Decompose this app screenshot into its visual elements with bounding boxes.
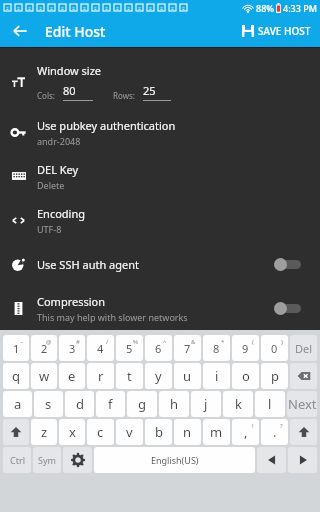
staticText: 1 — [13, 341, 20, 356]
button[interactable]: i — [203, 363, 230, 389]
staticText: andr-2048 — [37, 135, 81, 147]
staticText: % — [133, 338, 138, 346]
button[interactable]: 1 — [3, 335, 29, 361]
button[interactable]: d — [65, 391, 94, 417]
staticText: Use pubkey authentication — [37, 118, 176, 133]
button[interactable]: s — [34, 391, 63, 417]
button[interactable]: right — [288, 447, 317, 473]
button[interactable]: Use pubkey authentication — [0, 110, 320, 154]
staticText: r — [98, 367, 104, 385]
button[interactable]: DEL Key — [0, 154, 320, 198]
button[interactable]: b — [145, 419, 172, 445]
button[interactable]: c — [87, 419, 114, 445]
button[interactable]: Next — [287, 391, 317, 417]
button[interactable]: m — [203, 419, 230, 445]
staticText: 9 — [242, 341, 249, 356]
staticText: 2 — [41, 341, 48, 356]
staticText: l — [268, 395, 272, 413]
staticText: Edit Host — [45, 22, 106, 41]
button[interactable]: Back — [6, 17, 34, 45]
staticText: k — [235, 395, 242, 413]
staticText: ^ — [163, 338, 167, 346]
staticText: ! — [252, 422, 254, 430]
staticText: s — [45, 395, 52, 413]
staticText: f — [108, 395, 113, 413]
button[interactable]: up — [290, 419, 317, 445]
staticText: j — [204, 395, 208, 413]
button[interactable]: n — [174, 419, 201, 445]
button[interactable]: q — [3, 363, 29, 389]
button[interactable]: . — [261, 419, 288, 445]
button[interactable]: 9 — [232, 335, 259, 361]
button[interactable]: 3 — [59, 335, 85, 361]
staticText: 6 — [155, 341, 162, 356]
button[interactable]: x — [59, 419, 85, 445]
staticText: Sym — [38, 454, 56, 466]
button[interactable]: o — [232, 363, 259, 389]
staticText: z — [41, 423, 48, 441]
button[interactable]: SAVE HOST — [240, 20, 313, 42]
button[interactable]: Ctrl — [3, 447, 31, 473]
staticText: SAVE HOST — [258, 24, 311, 38]
staticText: h — [170, 395, 179, 413]
button[interactable]: l — [255, 391, 285, 417]
button[interactable]: h — [159, 391, 189, 417]
staticText: 0 — [271, 341, 278, 356]
staticText: p — [271, 367, 279, 385]
button[interactable]: w — [31, 363, 57, 389]
staticText: . — [273, 423, 277, 441]
button[interactable]: t — [116, 363, 143, 389]
button[interactable]: gear — [63, 447, 92, 473]
staticText: 8 — [213, 341, 220, 356]
button[interactable]: e — [59, 363, 85, 389]
staticText: g — [138, 395, 146, 413]
button[interactable]: Del — [290, 335, 317, 361]
staticText: Use SSH auth agent — [37, 257, 139, 272]
other: Compression toggle — [274, 299, 304, 317]
button[interactable]: Sym — [33, 447, 61, 473]
button[interactable]: g — [127, 391, 157, 417]
button[interactable]: a — [3, 391, 32, 417]
staticText: 4 — [97, 341, 104, 356]
staticText: DEL Key — [37, 162, 79, 177]
staticText: d — [76, 395, 84, 413]
button[interactable]: shift — [3, 419, 29, 445]
staticText: # — [76, 338, 80, 346]
button[interactable]: v — [116, 419, 143, 445]
button[interactable]: English(US) — [94, 447, 255, 473]
button[interactable]: r — [87, 363, 114, 389]
button[interactable]: Window size — [0, 55, 320, 110]
button[interactable]: y — [145, 363, 172, 389]
staticText: , — [244, 423, 248, 441]
staticText: q — [12, 367, 20, 385]
button[interactable]: Encoding — [0, 198, 320, 242]
button[interactable]: 5 — [116, 335, 143, 361]
button[interactable]: 0 — [261, 335, 288, 361]
button[interactable]: 2 — [31, 335, 57, 361]
button[interactable]: 8 — [203, 335, 230, 361]
staticText: & — [191, 338, 196, 346]
button[interactable]: bsp — [290, 363, 317, 389]
staticText: t — [127, 367, 132, 385]
staticText: n — [183, 423, 192, 441]
staticText: ( — [252, 338, 254, 346]
button[interactable]: k — [223, 391, 253, 417]
button[interactable]: f — [96, 391, 125, 417]
button[interactable]: 4 — [87, 335, 114, 361]
staticText: a — [14, 395, 22, 413]
button[interactable]: Compression — [0, 286, 320, 330]
staticText: 5 — [126, 341, 133, 356]
staticText: c — [97, 423, 104, 441]
button[interactable]: 7 — [174, 335, 201, 361]
button[interactable]: 6 — [145, 335, 172, 361]
button[interactable]: left — [257, 447, 286, 473]
staticText: ) — [281, 338, 283, 346]
button[interactable]: j — [191, 391, 221, 417]
button[interactable]: Use SSH auth agent — [0, 242, 320, 286]
button[interactable]: p — [261, 363, 288, 389]
button[interactable]: , — [232, 419, 259, 445]
staticText: Delete — [37, 179, 65, 191]
button[interactable]: u — [174, 363, 201, 389]
button[interactable]: z — [31, 419, 57, 445]
staticText: This may help with slower networks — [37, 311, 188, 323]
